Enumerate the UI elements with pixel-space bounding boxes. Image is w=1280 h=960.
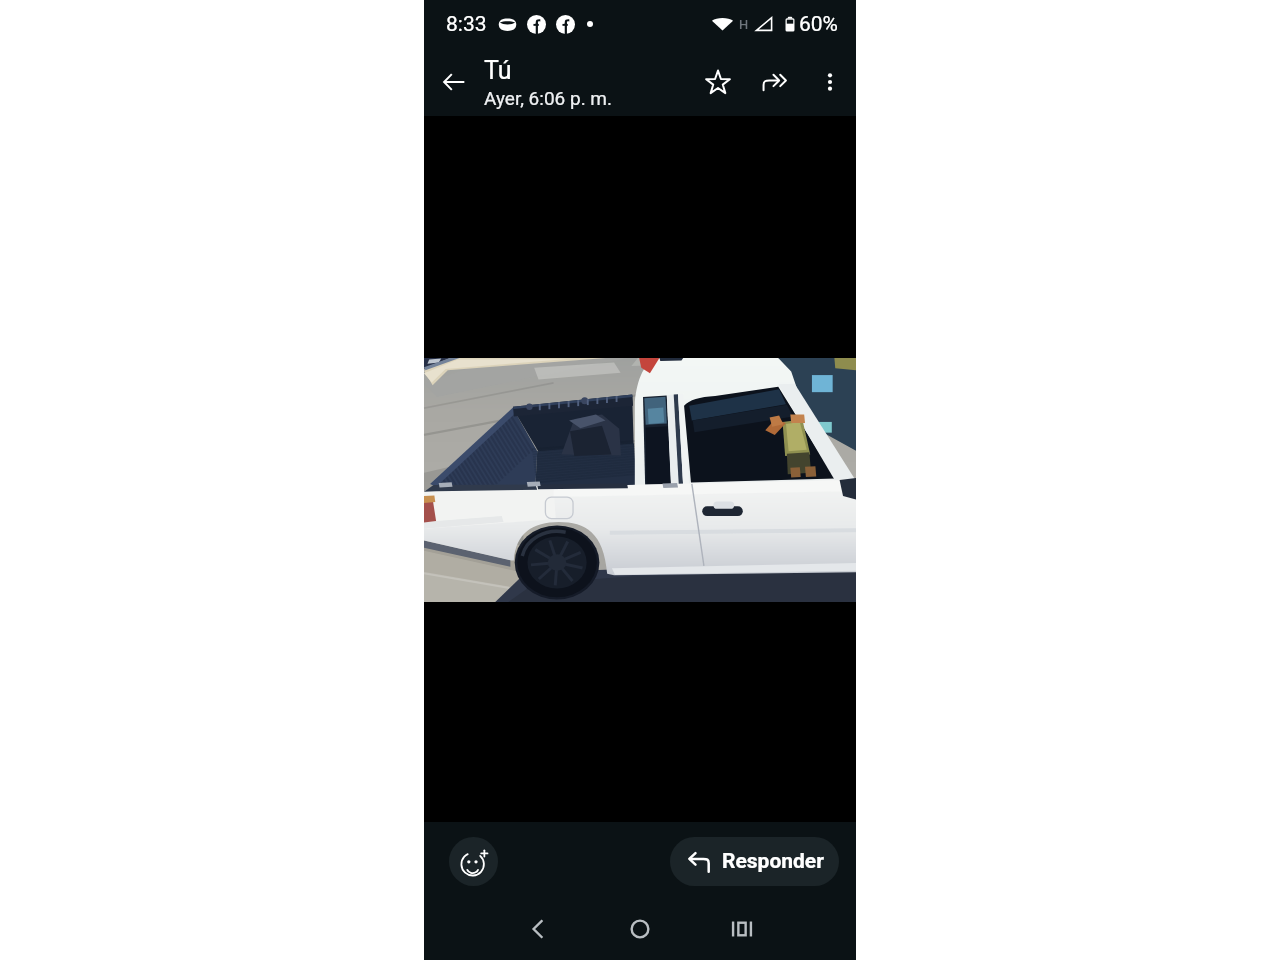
button[interactable]: Forward [746,48,804,116]
button[interactable]: Star [690,48,746,116]
staticText: 60% [799,12,838,37]
staticText: Ayer, 6:06 p. m. [484,87,613,109]
button[interactable]: Responder [670,837,839,886]
button[interactable]: Recents [718,905,766,953]
staticText: Responder [722,849,824,874]
button[interactable]: Back [514,905,562,953]
staticText: Tú [484,56,512,85]
button[interactable]: Add reaction [449,837,498,886]
button[interactable]: More options [804,48,856,116]
button[interactable]: Back [424,48,484,116]
button[interactable]: Home [616,905,664,953]
staticText: H [739,17,749,32]
staticText: 8:33 [446,12,487,37]
